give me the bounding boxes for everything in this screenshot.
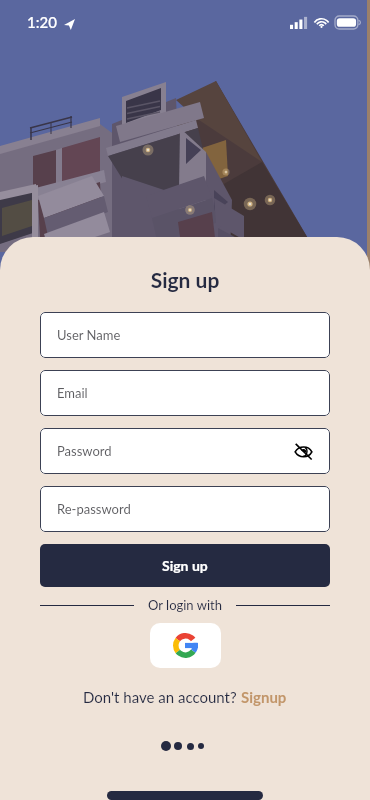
button[interactable]: User Name bbox=[40, 312, 330, 358]
staticText: Email bbox=[57, 385, 88, 401]
staticText: Sign up bbox=[0, 267, 370, 292]
staticText: User Name bbox=[57, 327, 121, 343]
staticText: Sign up bbox=[162, 557, 208, 574]
button[interactable]: Password bbox=[40, 428, 330, 474]
button[interactable]: Re-password bbox=[40, 486, 330, 532]
staticText: Re-password bbox=[57, 501, 131, 517]
staticText: Password bbox=[57, 443, 112, 459]
button[interactable]: Email bbox=[40, 370, 330, 416]
button[interactable]: Signup bbox=[241, 688, 287, 706]
other: Show password bbox=[294, 442, 313, 461]
button[interactable]: Login with Google bbox=[150, 623, 221, 668]
button[interactable]: Sign up bbox=[40, 544, 330, 587]
staticText: Don't have an account? bbox=[83, 688, 241, 706]
staticText: Or login with bbox=[148, 597, 222, 613]
staticText: 1:20 bbox=[27, 13, 57, 31]
